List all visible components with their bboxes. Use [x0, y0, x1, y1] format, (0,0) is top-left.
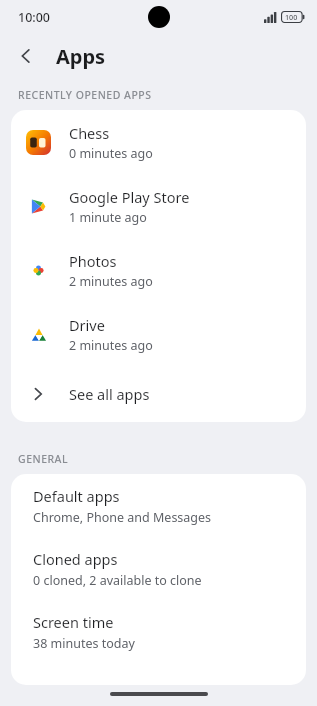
staticText: 2 minutes ago — [69, 337, 153, 354]
staticText: Chrome, Phone and Messages — [33, 509, 212, 526]
staticText: Cloned apps — [33, 549, 118, 569]
staticText: Chess — [69, 123, 110, 143]
button[interactable]: See all apps — [11, 366, 306, 422]
staticText: Photos — [69, 251, 117, 271]
button[interactable]: Cloned apps — [11, 537, 306, 600]
staticText: Apps — [56, 43, 106, 70]
staticText: 38 minutes today — [33, 635, 135, 652]
staticText: 0 cloned, 2 available to clone — [33, 572, 202, 589]
button[interactable]: Google Play Store — [11, 174, 306, 238]
button[interactable]: Back — [6, 36, 46, 76]
staticText: 2 minutes ago — [69, 273, 153, 290]
staticText: RECENTLY OPENED APPS — [18, 88, 152, 102]
button[interactable]: Default apps — [11, 474, 306, 537]
button[interactable]: Drive — [11, 302, 306, 366]
button[interactable]: Photos — [11, 238, 306, 302]
staticText: Drive — [69, 315, 105, 335]
staticText: 100 — [285, 12, 298, 22]
staticText: 1 minute ago — [69, 209, 147, 226]
staticText: GENERAL — [18, 452, 69, 466]
staticText: 0 minutes ago — [69, 145, 153, 162]
button[interactable]: Screen time — [11, 600, 306, 663]
button[interactable]: Chess — [11, 110, 306, 174]
staticText: See all apps — [69, 384, 150, 404]
staticText: Google Play Store — [69, 187, 190, 207]
staticText: Screen time — [33, 612, 114, 632]
staticText: Default apps — [33, 486, 120, 506]
staticText: 10:00 — [18, 9, 51, 26]
